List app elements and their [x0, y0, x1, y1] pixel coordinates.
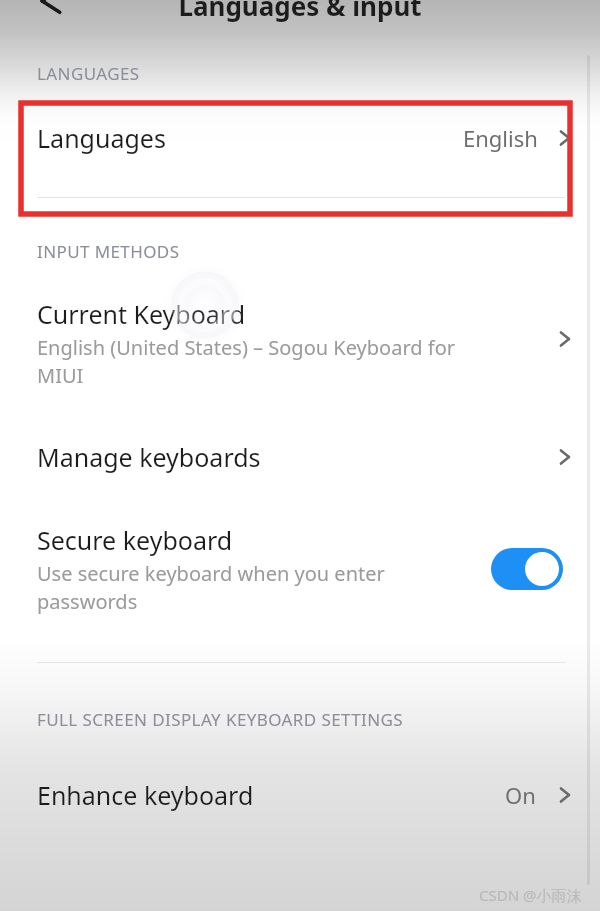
staticText: INPUT METHODS — [37, 240, 180, 263]
staticText: Languages & input — [0, 0, 600, 23]
staticText: Manage keyboards — [37, 440, 261, 474]
button[interactable]: Secure keyboard toggle, on — [491, 548, 563, 590]
button[interactable]: Secure keyboard — [0, 523, 600, 615]
button[interactable]: Current Keyboard — [0, 293, 600, 393]
staticText: On — [505, 780, 536, 810]
button[interactable]: Back — [28, 0, 72, 22]
button[interactable]: Enhance keyboard — [0, 773, 600, 817]
button[interactable]: Languages — [0, 109, 600, 167]
staticText: Use secure keyboard when you enter passw… — [37, 560, 385, 615]
staticText: Secure keyboard — [37, 523, 233, 557]
staticText: Enhance keyboard — [37, 778, 254, 812]
staticText: English (United States) – Sogou Keyboard… — [37, 334, 455, 389]
staticText: LANGUAGES — [37, 62, 140, 85]
button[interactable]: Manage keyboards — [0, 435, 600, 479]
staticText: Current Keyboard — [37, 297, 246, 331]
staticText: CSDN @小雨沫 — [479, 885, 582, 905]
staticText: Languages — [37, 121, 166, 155]
staticText: English — [463, 123, 538, 153]
staticText: FULL SCREEN DISPLAY KEYBOARD SETTINGS — [37, 708, 404, 731]
